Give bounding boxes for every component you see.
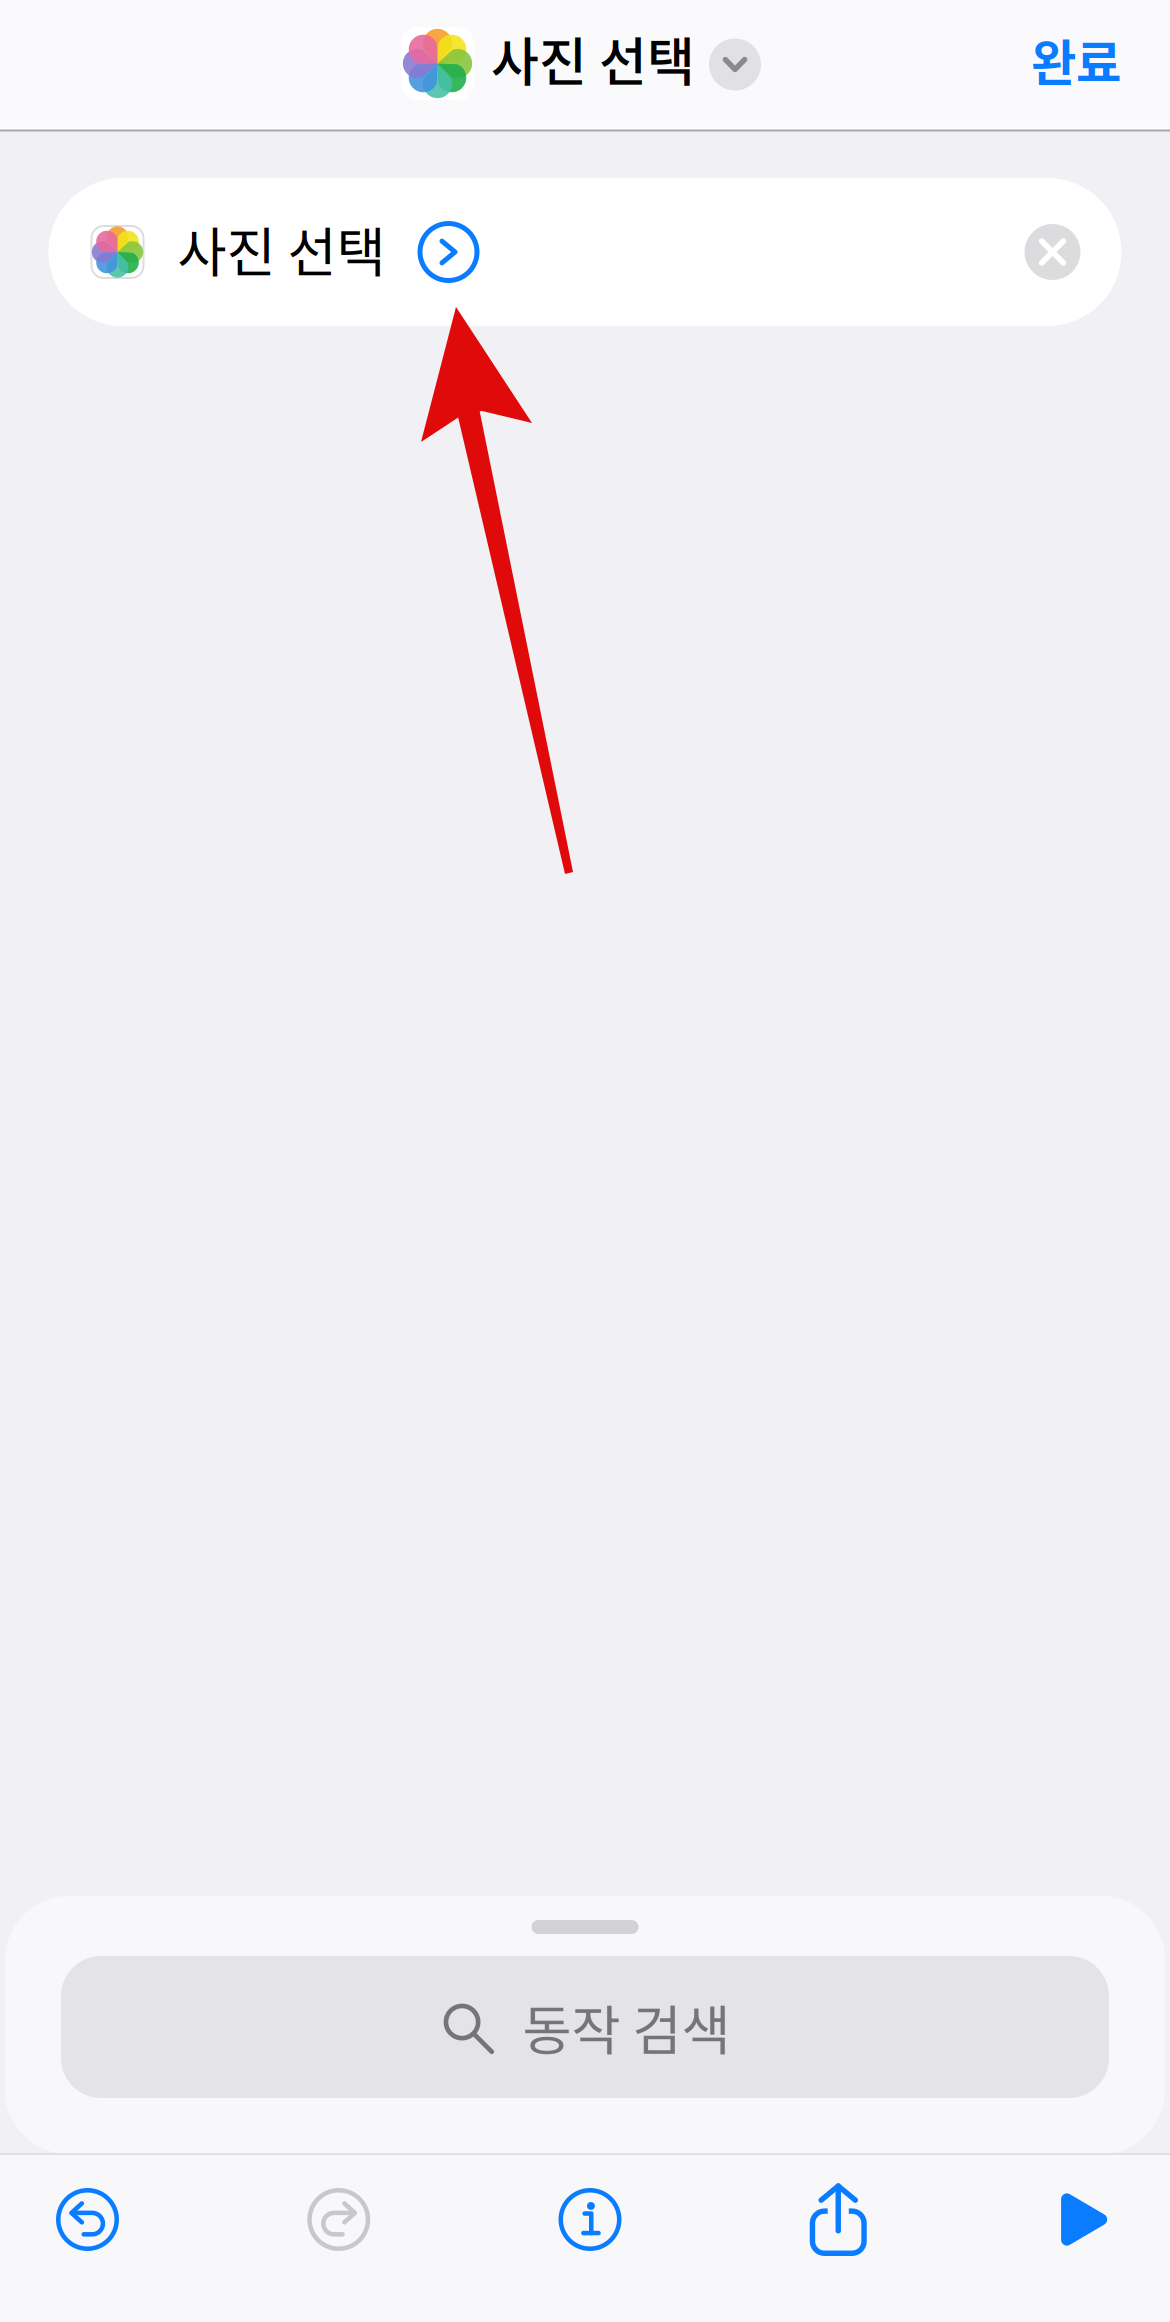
- button[interactable]: 사진 선택: [48, 178, 1121, 326]
- button[interactable]: 사진 선택: [405, 14, 765, 117]
- staticText: 사진 선택: [177, 210, 385, 288]
- button[interactable]: Share: [810, 2183, 867, 2256]
- staticText: 완료: [1031, 24, 1121, 95]
- staticText: 동작 검색: [522, 1988, 730, 2066]
- staticText: 사진 선택: [491, 21, 695, 96]
- button[interactable]: 완료: [991, 6, 1170, 125]
- button[interactable]: Redo: [307, 2188, 370, 2251]
- button[interactable]: Run: [1055, 2190, 1113, 2248]
- button[interactable]: Details: [558, 2188, 621, 2251]
- button[interactable]: Undo: [56, 2188, 119, 2251]
